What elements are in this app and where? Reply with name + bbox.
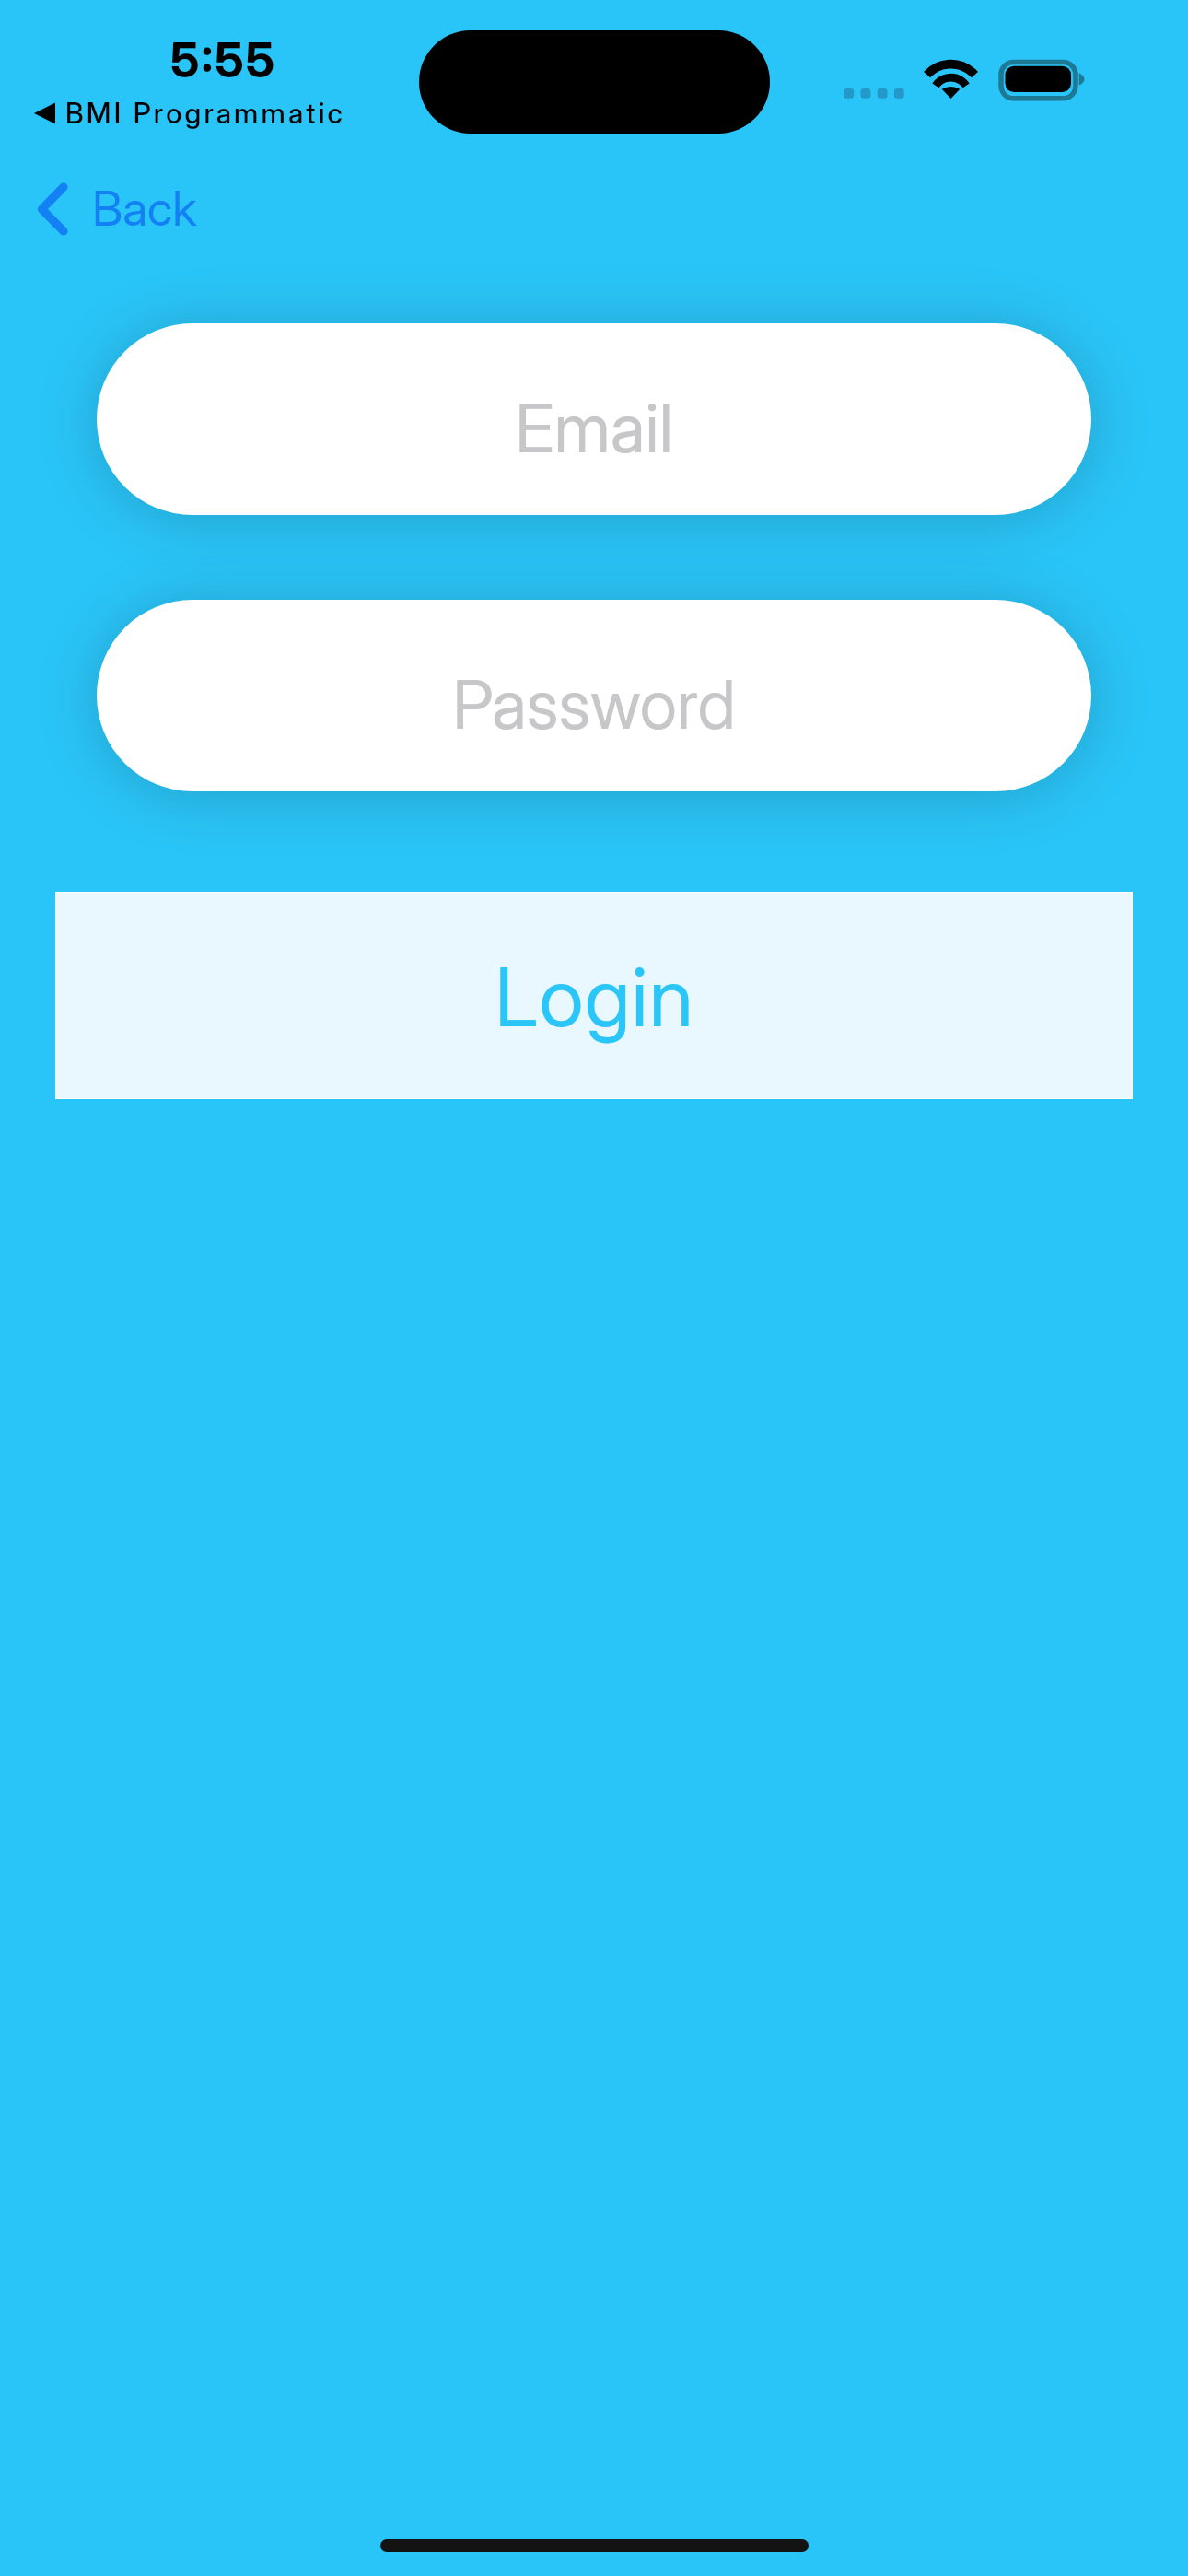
button[interactable]: Login bbox=[56, 893, 1132, 1098]
button[interactable]: Email bbox=[97, 323, 1091, 515]
staticText: Email bbox=[515, 387, 673, 468]
staticText: BMI Programmatic bbox=[65, 96, 346, 130]
staticText: Login bbox=[495, 948, 694, 1046]
staticText: Back bbox=[92, 180, 197, 238]
button[interactable]: Back bbox=[24, 166, 214, 252]
staticText: 5:55 bbox=[170, 30, 277, 89]
staticText: Password bbox=[452, 663, 736, 744]
button[interactable]: Password bbox=[97, 600, 1091, 791]
other: Back bbox=[37, 182, 68, 236]
